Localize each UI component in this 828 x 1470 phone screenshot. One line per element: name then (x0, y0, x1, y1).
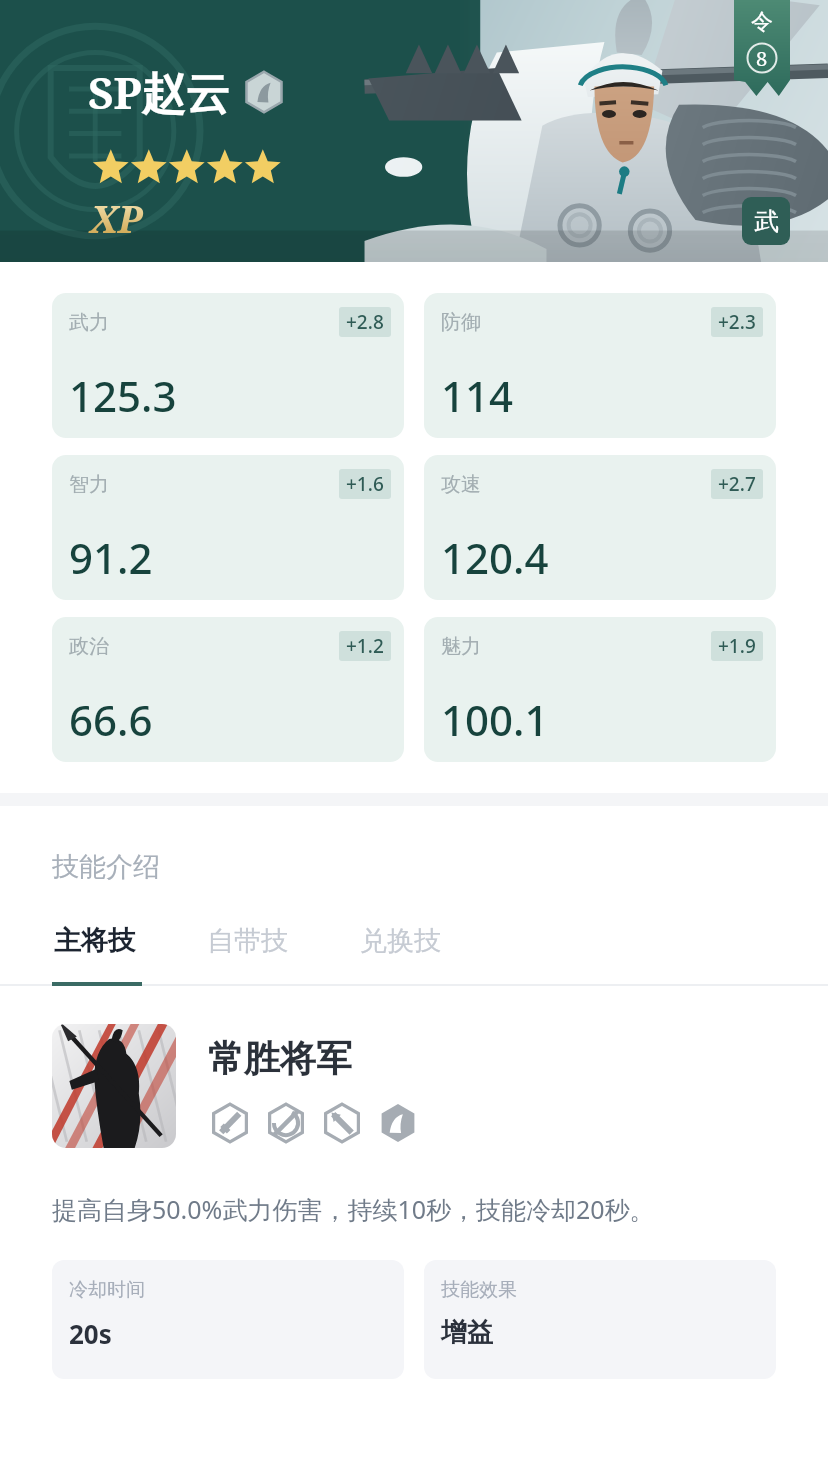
staticText: 91.2 (69, 529, 153, 586)
staticText: 自带技 (207, 924, 288, 958)
staticText: 兑换技 (360, 924, 441, 958)
staticText: 攻速 (441, 472, 481, 497)
staticText: 125.3 (69, 367, 177, 424)
button[interactable]: 兑换技 (358, 918, 443, 964)
staticText: 8 (756, 45, 768, 72)
staticText: +1.6 (346, 471, 384, 497)
staticText: 智力 (69, 472, 109, 497)
staticText: 武 (754, 206, 779, 237)
staticText: +2.7 (718, 471, 756, 497)
staticText: XP (90, 192, 144, 244)
staticText: +1.2 (346, 633, 384, 659)
staticText: +2.8 (346, 309, 384, 335)
staticText: 20s (69, 1316, 112, 1351)
button[interactable]: 主将技 (52, 918, 137, 964)
staticText: 120.4 (441, 529, 549, 586)
button[interactable]: 防御 (424, 293, 776, 438)
staticText: 魅力 (441, 634, 481, 659)
button[interactable]: Skill icon 常胜将军 (52, 1024, 176, 1148)
button[interactable]: Troop type 武 (742, 197, 790, 245)
button[interactable]: 攻速 (424, 455, 776, 600)
button[interactable]: 冷却时间 (52, 1260, 404, 1379)
staticText: 政治 (69, 634, 109, 659)
staticText: 防御 (441, 310, 481, 335)
staticText: +2.3 (718, 309, 756, 335)
staticText: 冷却时间 (69, 1278, 145, 1302)
button[interactable]: Troop type 1 (208, 1101, 252, 1145)
staticText: 常胜将军 (208, 1036, 352, 1081)
button[interactable]: Troop type 4 (376, 1101, 420, 1145)
staticText: 主将技 (54, 924, 135, 958)
staticText: 技能介绍 (52, 850, 160, 884)
button[interactable]: Rank banner (734, 0, 790, 96)
staticText: 增益 (441, 1316, 493, 1349)
button[interactable]: 政治 (52, 617, 404, 762)
staticText: 令 (751, 8, 773, 36)
button[interactable]: 武力 (52, 293, 404, 438)
button[interactable]: 智力 (52, 455, 404, 600)
staticText: 100.1 (441, 691, 549, 748)
button[interactable]: 自带技 (205, 918, 290, 964)
staticText: 提高自身50.0%武力伤害，持续10秒，技能冷却20秒。 (52, 1192, 655, 1226)
staticText: SP赵云 (88, 62, 230, 122)
button[interactable]: 魅力 (424, 617, 776, 762)
button[interactable]: Troop type 3 (320, 1101, 364, 1145)
button[interactable]: Troop type 2 (264, 1101, 308, 1145)
button[interactable]: 技能效果 (424, 1260, 776, 1379)
staticText: 武力 (69, 310, 109, 335)
staticText: 66.6 (69, 691, 153, 748)
staticText: 114 (441, 367, 514, 424)
staticText: 技能效果 (441, 1278, 517, 1302)
staticText: +1.9 (718, 633, 756, 659)
